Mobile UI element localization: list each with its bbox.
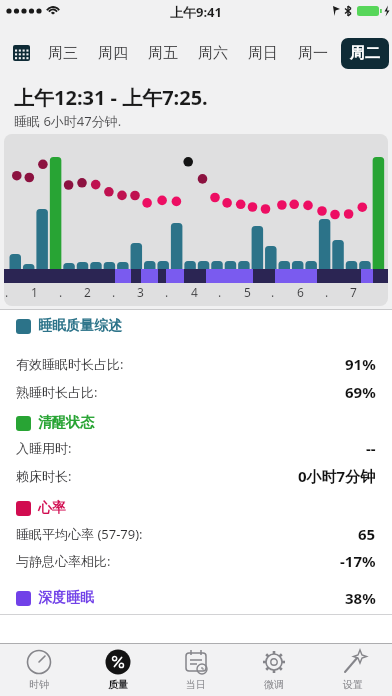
staticText: 睡眠质量综述 — [38, 317, 122, 335]
staticText: 清醒状态 — [38, 414, 94, 432]
button[interactable]: 入睡用时: — [0, 434, 392, 462]
staticText: . — [271, 284, 275, 300]
staticText: 38% — [345, 588, 376, 608]
staticText: 4 — [191, 284, 198, 300]
staticText: . — [59, 284, 63, 300]
staticText: 周日 — [248, 44, 278, 63]
staticText: 睡眠平均心率 (57-79): — [16, 525, 143, 543]
button[interactable]: 赖床时长: — [0, 462, 392, 490]
button[interactable]: 心率 — [0, 495, 392, 521]
staticText: 5 — [244, 284, 251, 300]
staticText: 当日 — [186, 678, 206, 691]
staticText: 1 — [31, 284, 38, 300]
button[interactable]: 周一 — [297, 30, 329, 76]
staticText: . — [112, 284, 116, 300]
staticText: -17% — [340, 551, 376, 571]
staticText: -- — [366, 438, 376, 458]
button[interactable]: 质量 — [79, 644, 157, 696]
staticText: 3 — [137, 284, 144, 300]
staticText: 2 — [84, 284, 91, 300]
staticText: . — [165, 284, 169, 300]
button[interactable]: 周四 — [97, 30, 129, 76]
button[interactable]: 周五 — [147, 30, 179, 76]
staticText: 周一 — [298, 44, 328, 63]
staticText: 设置 — [343, 678, 363, 691]
staticText: 周五 — [148, 44, 178, 63]
button[interactable]: 睡眠平均心率 (57-79): — [0, 520, 392, 548]
staticText: 睡眠 6小时47分钟. — [14, 112, 122, 130]
staticText: . — [325, 284, 329, 300]
staticText: 与静息心率相比: — [16, 552, 111, 570]
button[interactable]: 周三 — [47, 30, 79, 76]
button[interactable]: 设置 — [314, 644, 392, 696]
button[interactable]: 当日 — [157, 644, 235, 696]
staticText: 入睡用时: — [16, 439, 72, 457]
staticText: 0小时7分钟 — [298, 466, 376, 486]
staticText: 65 — [358, 524, 376, 544]
button[interactable]: 深度睡眠 — [0, 585, 392, 611]
staticText: 周三 — [48, 44, 78, 63]
staticText: 赖床时长: — [16, 467, 72, 485]
button[interactable]: 时钟 — [0, 644, 78, 696]
staticText: 微调 — [264, 678, 284, 691]
staticText: 周二 — [350, 44, 380, 63]
staticText: 有效睡眠时长占比: — [16, 355, 124, 373]
staticText: 91% — [345, 354, 376, 374]
staticText: . — [218, 284, 222, 300]
button[interactable]: 周日 — [247, 30, 279, 76]
button[interactable]: 清醒状态 — [0, 410, 392, 436]
staticText: . — [5, 284, 9, 300]
staticText: 上午9:41 — [170, 3, 222, 21]
staticText: 周六 — [198, 44, 228, 63]
staticText: 7 — [350, 284, 357, 300]
button[interactable] — [13, 45, 30, 62]
button[interactable]: 周二 — [341, 38, 389, 69]
button[interactable]: 有效睡眠时长占比: — [0, 350, 392, 378]
button[interactable]: 微调 — [235, 644, 313, 696]
staticText: 时钟 — [29, 678, 49, 691]
button[interactable]: 周六 — [197, 30, 229, 76]
button[interactable]: 睡眠质量综述 — [0, 313, 392, 339]
staticText: 心率 — [38, 499, 66, 517]
staticText: 周四 — [98, 44, 128, 63]
staticText: 上午12:31 - 上午7:25. — [14, 84, 208, 111]
staticText: 质量 — [108, 678, 128, 691]
staticText: 6 — [297, 284, 304, 300]
staticText: 深度睡眠 — [38, 589, 94, 607]
button[interactable]: 与静息心率相比: — [0, 547, 392, 575]
staticText: 熟睡时长占比: — [16, 383, 98, 401]
staticText: 69% — [345, 382, 376, 402]
button[interactable]: 熟睡时长占比: — [0, 378, 392, 406]
